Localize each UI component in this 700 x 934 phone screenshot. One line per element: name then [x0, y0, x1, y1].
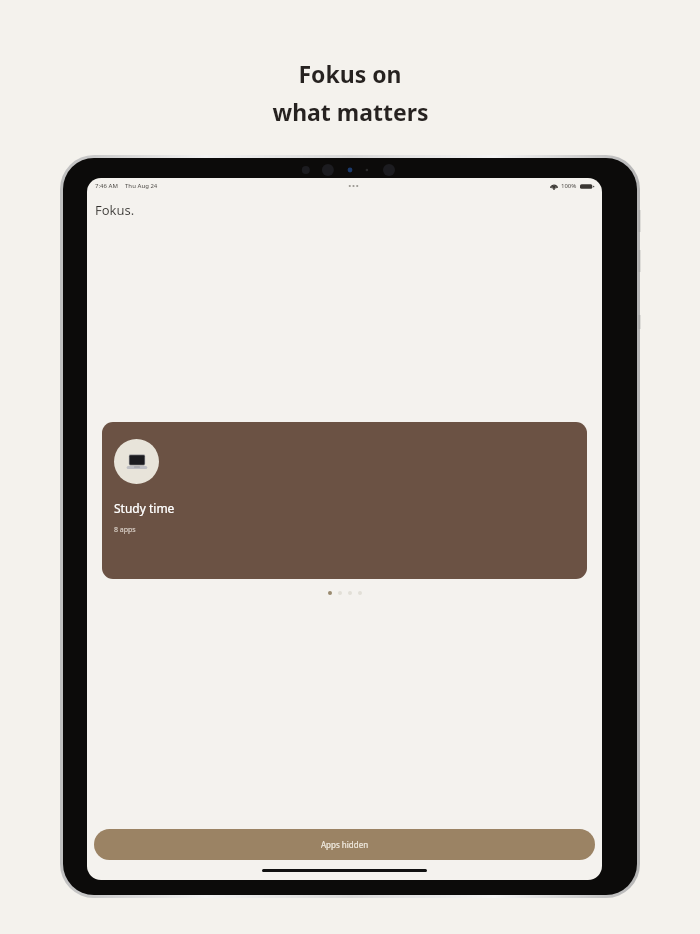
staticText: Fokus on [298, 58, 402, 89]
staticText: 100% [561, 182, 577, 190]
button[interactable] [328, 591, 332, 595]
button[interactable] [348, 591, 352, 595]
button[interactable] [338, 591, 342, 595]
staticText: 8 apps [114, 525, 136, 535]
button[interactable] [358, 591, 362, 595]
staticText: Study time [114, 500, 175, 516]
staticText: Fokus. [95, 201, 135, 219]
staticText: what matters [272, 96, 429, 127]
button[interactable]: Study time [102, 422, 587, 579]
staticText: Apps hidden [321, 839, 369, 850]
staticText: Thu Aug 24 [125, 182, 158, 190]
other: Home indicator [262, 869, 427, 872]
staticText: 7:46 AM [95, 182, 118, 190]
button[interactable]: Apps hidden [94, 829, 595, 860]
